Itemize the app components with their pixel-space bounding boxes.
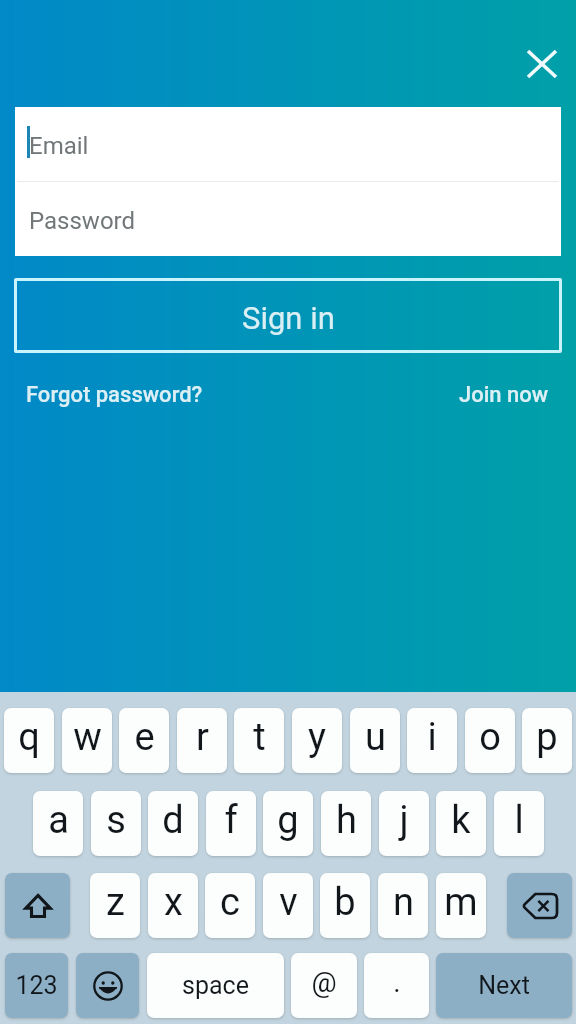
staticText: x <box>164 880 183 925</box>
button[interactable]: . <box>364 953 429 1018</box>
button[interactable]: e <box>119 708 169 773</box>
button[interactable]: k <box>436 791 486 856</box>
button[interactable]: space <box>147 953 284 1018</box>
button[interactable]: f <box>206 791 256 856</box>
button[interactable]: u <box>350 708 400 773</box>
staticText: s <box>106 798 126 843</box>
staticText: h <box>336 798 357 843</box>
staticText: i <box>427 715 437 760</box>
button[interactable]: Forgot password? <box>16 372 213 418</box>
staticText: Password <box>29 207 136 235</box>
button[interactable]: l <box>494 791 544 856</box>
staticText: t <box>253 715 266 760</box>
button[interactable]: j <box>379 791 429 856</box>
staticText: b <box>334 880 356 925</box>
staticText: 123 <box>15 971 58 1000</box>
staticText: space <box>182 971 249 1000</box>
staticText: Email <box>29 132 89 160</box>
button[interactable]: c <box>205 873 255 938</box>
staticText: Next <box>478 971 530 1000</box>
staticText: y <box>308 715 326 760</box>
staticText: v <box>279 880 298 925</box>
button[interactable]: n <box>378 873 428 938</box>
staticText: @ <box>311 966 337 999</box>
button[interactable]: g <box>263 791 313 856</box>
button[interactable]: Close <box>514 36 570 92</box>
staticText: u <box>365 715 386 760</box>
button[interactable]: p <box>522 708 572 773</box>
staticText: . <box>393 966 401 999</box>
button[interactable]: t <box>234 708 284 773</box>
staticText: Forgot password? <box>26 382 203 408</box>
staticText: z <box>106 880 125 925</box>
button[interactable]: Emoji <box>76 953 139 1018</box>
staticText: n <box>393 880 414 925</box>
staticText: a <box>48 798 69 843</box>
staticText: p <box>536 715 558 760</box>
button[interactable]: @ <box>291 953 357 1018</box>
staticText: q <box>18 715 40 760</box>
button[interactable]: Password <box>15 182 561 256</box>
button[interactable]: x <box>148 873 198 938</box>
staticText: d <box>162 798 184 843</box>
staticText: l <box>514 798 524 843</box>
button[interactable]: s <box>91 791 141 856</box>
button[interactable]: a <box>33 791 83 856</box>
staticText: w <box>73 715 102 760</box>
staticText: k <box>451 798 471 843</box>
button[interactable]: Next <box>436 953 572 1018</box>
button[interactable]: z <box>90 873 140 938</box>
button[interactable]: b <box>320 873 370 938</box>
button[interactable]: Join now <box>449 372 559 418</box>
other: Backspace <box>523 894 557 918</box>
button[interactable]: q <box>4 708 54 773</box>
button[interactable]: m <box>436 873 486 938</box>
staticText: g <box>277 798 299 843</box>
staticText: f <box>224 798 238 843</box>
button[interactable]: Shift <box>5 873 70 938</box>
other: Emoji <box>93 971 123 1001</box>
button[interactable]: y <box>292 708 342 773</box>
staticText: r <box>196 715 209 760</box>
staticText: o <box>479 715 501 760</box>
button[interactable]: h <box>321 791 371 856</box>
button[interactable]: i <box>407 708 457 773</box>
button[interactable]: Backspace <box>507 873 572 938</box>
staticText: e <box>134 715 155 760</box>
button[interactable]: o <box>465 708 515 773</box>
button[interactable]: Email <box>15 107 561 181</box>
staticText: Join now <box>459 382 549 408</box>
button[interactable]: w <box>62 708 112 773</box>
button[interactable]: r <box>177 708 227 773</box>
staticText: j <box>399 798 409 843</box>
staticText: c <box>220 880 240 925</box>
staticText: m <box>444 880 478 925</box>
button[interactable]: 123 <box>5 953 68 1018</box>
button[interactable]: d <box>148 791 198 856</box>
other: Shift <box>25 894 51 918</box>
staticText: Sign in <box>242 300 335 336</box>
button[interactable]: v <box>263 873 313 938</box>
button[interactable]: Sign in <box>14 278 562 353</box>
